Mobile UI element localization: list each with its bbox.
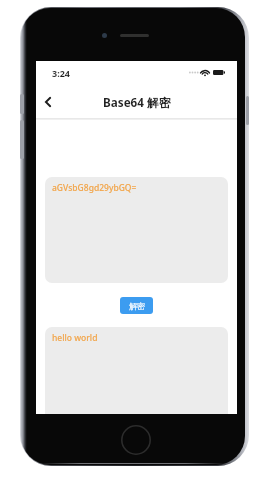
staticText: 解密 bbox=[129, 301, 145, 311]
button[interactable]: 解密 bbox=[120, 297, 153, 314]
staticText: aGVsbG8gd29ybGQ= bbox=[52, 182, 137, 194]
staticText: hello world bbox=[52, 332, 98, 344]
button[interactable]: Back bbox=[37, 91, 59, 113]
staticText: 3:24 bbox=[52, 67, 70, 79]
button[interactable]: aGVsbG8gd29ybGQ= bbox=[45, 177, 228, 283]
staticText: Base64 解密 bbox=[103, 94, 171, 110]
